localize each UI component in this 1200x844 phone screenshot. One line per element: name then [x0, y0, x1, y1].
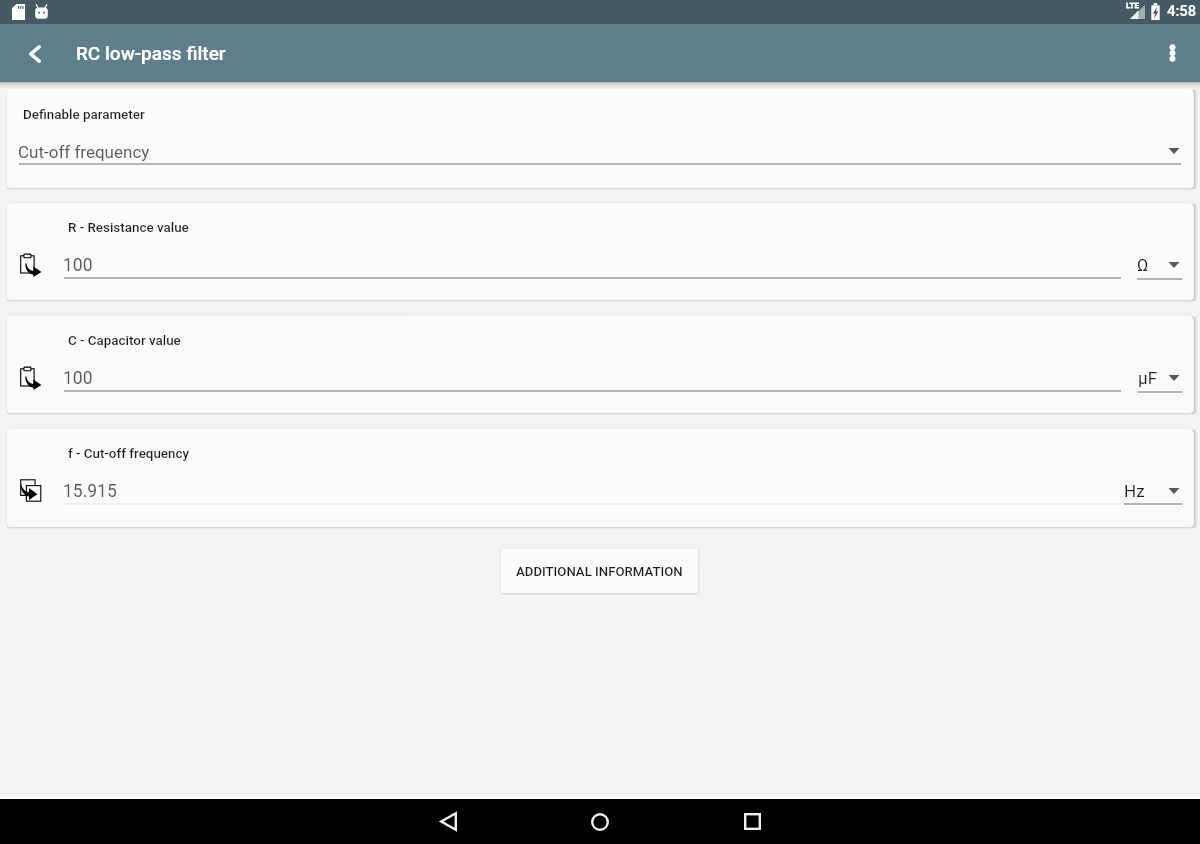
button[interactable]: Change unit: [1150, 358, 1193, 398]
staticText: f - Cut-off frequency: [68, 446, 190, 462]
button[interactable]: Recent apps: [728, 799, 776, 844]
button[interactable]: Paste from clipboard: [20, 253, 42, 277]
button[interactable]: Change unit: [1150, 131, 1193, 171]
button[interactable]: Home: [576, 799, 624, 844]
staticText: Cut-off frequency: [18, 142, 150, 162]
staticText: 4:58: [1167, 2, 1197, 19]
staticText: µF: [1138, 368, 1158, 388]
button[interactable]: Copy result to clipboard: [20, 479, 42, 503]
staticText: 100: [63, 368, 93, 389]
staticText: 15.915: [63, 481, 117, 502]
button[interactable]: ADDITIONAL INFORMATION: [501, 549, 698, 593]
button[interactable]: More options: [1148, 24, 1196, 82]
staticText: 100: [63, 255, 93, 276]
staticText: Hz: [1124, 481, 1145, 501]
staticText: Definable parameter: [23, 107, 145, 123]
staticText: RC low-pass filter: [76, 42, 226, 64]
button[interactable]: Navigate up: [16, 24, 52, 82]
button[interactable]: Change unit: [1150, 471, 1193, 511]
button[interactable]: Paste from clipboard: [20, 366, 42, 390]
staticText: R - Resistance value: [68, 220, 189, 236]
button[interactable]: Back: [424, 799, 472, 844]
staticText: C - Capacitor value: [68, 333, 181, 349]
staticText: ADDITIONAL INFORMATION: [516, 564, 683, 579]
button[interactable]: Change unit: [1150, 245, 1193, 285]
staticText: Ω: [1137, 255, 1149, 275]
staticText: LTE: [1126, 1, 1139, 10]
